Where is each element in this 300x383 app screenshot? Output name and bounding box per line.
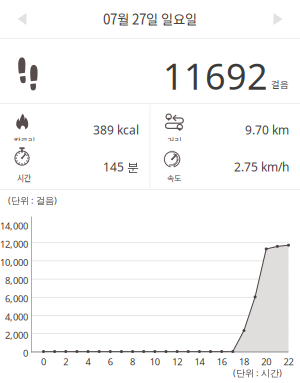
staticText: 18: [239, 355, 249, 368]
staticText: 12: [172, 355, 182, 368]
staticText: 8,000: [5, 274, 28, 287]
staticText: 6: [108, 355, 113, 368]
staticText: 10: [150, 355, 160, 368]
staticText: (단위 : 걸음): [8, 194, 57, 206]
staticText: 4: [85, 355, 90, 368]
staticText: 07월 27일 일요일: [103, 9, 197, 28]
staticText: 2.75 km/h: [234, 159, 289, 175]
staticText: 11692: [163, 52, 268, 100]
staticText: 12,000: [0, 238, 28, 250]
staticText: 시간: [17, 172, 31, 184]
staticText: 4,000: [5, 311, 28, 323]
staticText: 9.70 km: [245, 122, 289, 138]
staticText: 2,000: [5, 329, 28, 341]
staticText: 145 분: [103, 159, 139, 175]
staticText: 0: [41, 355, 46, 368]
staticText: 2: [63, 355, 68, 368]
staticText: 22: [283, 355, 293, 368]
button[interactable]: 거리: [150, 104, 300, 147]
staticText: 20: [261, 355, 271, 368]
staticText: (단위 : 시간): [233, 366, 282, 379]
button[interactable]: 칼로리: [0, 104, 150, 147]
staticText: 6,000: [5, 292, 28, 305]
staticText: 거리: [167, 135, 181, 147]
button[interactable]: 속도: [150, 141, 300, 184]
button[interactable]: 시간: [0, 141, 150, 184]
staticText: 속도: [167, 172, 181, 184]
staticText: 10,000: [0, 256, 28, 268]
staticText: 0: [23, 347, 28, 359]
button[interactable]: Next day: [260, 2, 296, 36]
staticText: 걸음: [271, 77, 289, 91]
staticText: 칼로리: [13, 135, 34, 147]
staticText: 14,000: [0, 220, 28, 232]
staticText: 14: [194, 355, 204, 368]
staticText: 16: [217, 355, 227, 368]
staticText: 8: [130, 355, 135, 368]
staticText: 389 kcal: [93, 122, 139, 138]
button[interactable]: Previous day: [4, 2, 40, 36]
